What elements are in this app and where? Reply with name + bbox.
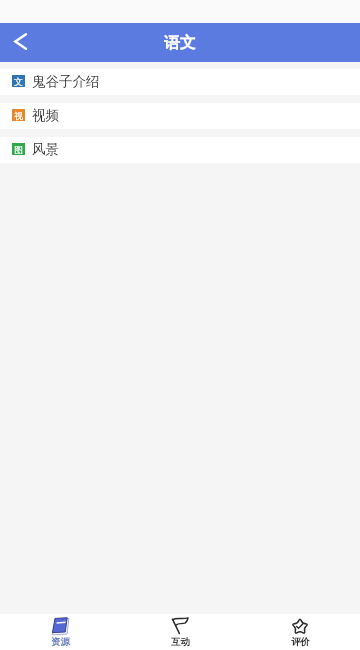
staticText: 资源 bbox=[51, 636, 70, 648]
staticText: 评价 bbox=[291, 636, 310, 648]
button[interactable]: 评价 bbox=[240, 614, 360, 650]
button[interactable]: 图 bbox=[0, 137, 360, 163]
staticText: 语文 bbox=[164, 33, 196, 53]
button[interactable]: 互动 bbox=[120, 614, 240, 650]
staticText: 互动 bbox=[171, 636, 190, 648]
staticText: 视 bbox=[14, 110, 23, 121]
button[interactable]: 视 bbox=[0, 103, 360, 129]
staticText: 图 bbox=[14, 144, 23, 155]
button[interactable]: 资源 bbox=[0, 614, 120, 650]
staticText: 视频 bbox=[32, 107, 59, 124]
button[interactable]: Back bbox=[0, 23, 40, 62]
staticText: 鬼谷子介绍 bbox=[32, 73, 100, 90]
staticText: 风景 bbox=[32, 141, 59, 158]
staticText: 文 bbox=[14, 76, 23, 87]
button[interactable]: 文 bbox=[0, 69, 360, 95]
